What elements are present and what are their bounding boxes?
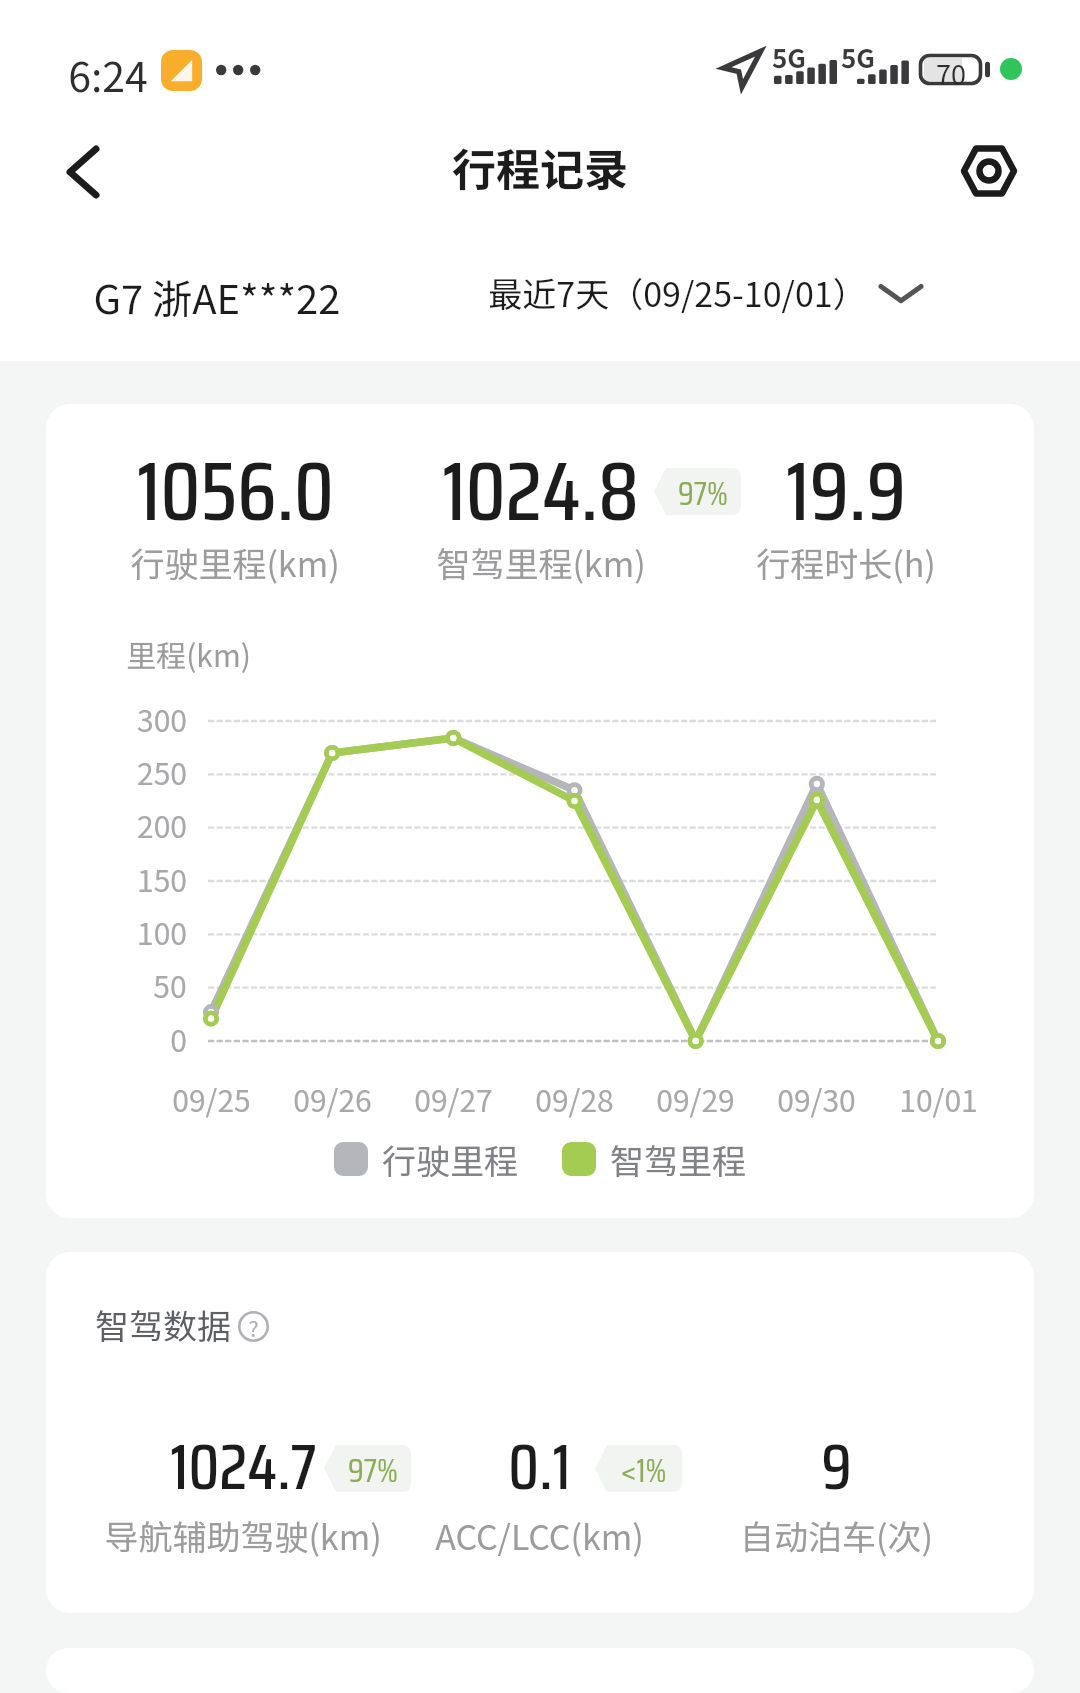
staticText: ACC/LCC(km) bbox=[435, 1511, 644, 1560]
staticText: 150 bbox=[137, 857, 187, 900]
staticText: 行驶里程 bbox=[382, 1135, 518, 1184]
staticText: 导航辅助驾驶(km) bbox=[104, 1511, 382, 1560]
staticText: 250 bbox=[137, 750, 187, 793]
staticText: 70 bbox=[936, 54, 966, 85]
staticText: ? bbox=[248, 1311, 259, 1342]
staticText: 19.9 bbox=[786, 426, 906, 557]
staticText: 行程时长(h) bbox=[756, 538, 936, 587]
staticText: <1% bbox=[620, 1445, 667, 1492]
staticText: 5G bbox=[841, 38, 875, 76]
staticText: 09/26 bbox=[293, 1077, 372, 1120]
staticText: 智驾里程 bbox=[610, 1135, 746, 1184]
staticText: 200 bbox=[137, 803, 187, 846]
staticText: 10/01 bbox=[899, 1077, 978, 1120]
staticText: 智驾里程(km) bbox=[436, 538, 646, 587]
staticText: 智驾数据 bbox=[95, 1300, 231, 1349]
staticText: 行程记录 bbox=[452, 135, 628, 199]
staticText: 0.1 bbox=[508, 1416, 571, 1517]
staticText: 1024.7 bbox=[170, 1416, 317, 1517]
button[interactable]: 最近7天（09/25-10/01） bbox=[488, 268, 921, 317]
staticText: 97% bbox=[678, 468, 728, 515]
staticText: G7 浙AE***22 bbox=[93, 268, 341, 326]
staticText: 50 bbox=[153, 963, 187, 1006]
staticText: 09/30 bbox=[777, 1077, 856, 1120]
staticText: 1024.8 bbox=[442, 426, 639, 557]
staticText: 6:24 bbox=[68, 44, 148, 103]
staticText: 09/27 bbox=[414, 1077, 493, 1120]
staticText: 100 bbox=[137, 910, 187, 953]
staticText: 行驶里程(km) bbox=[130, 538, 340, 587]
staticText: 0 bbox=[170, 1017, 187, 1060]
staticText: 09/28 bbox=[535, 1077, 614, 1120]
staticText: 自动泊车(次) bbox=[740, 1511, 933, 1560]
button[interactable]: 智驾数据 bbox=[95, 1300, 269, 1349]
staticText: 9 bbox=[821, 1416, 852, 1517]
button[interactable]: Back bbox=[38, 127, 128, 217]
staticText: 最近7天（09/25-10/01） bbox=[488, 268, 867, 317]
staticText: 里程(km) bbox=[126, 632, 251, 675]
staticText: 09/25 bbox=[172, 1077, 251, 1120]
staticText: 09/29 bbox=[656, 1077, 735, 1120]
staticText: 1056.0 bbox=[137, 426, 334, 557]
staticText: 97% bbox=[348, 1445, 398, 1492]
button[interactable]: G7 浙AE***22 bbox=[93, 268, 341, 326]
staticText: 5G bbox=[772, 38, 806, 76]
button[interactable]: Settings bbox=[944, 126, 1034, 216]
staticText: 300 bbox=[137, 697, 187, 740]
